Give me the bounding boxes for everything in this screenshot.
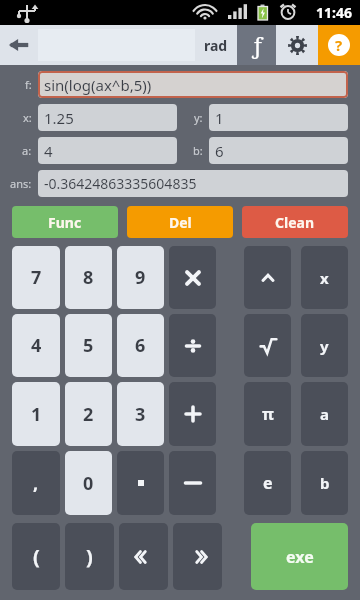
staticText: 2 — [83, 402, 94, 427]
staticText: f: — [25, 77, 32, 92]
staticText: 9 — [135, 265, 146, 290]
button[interactable]: y — [301, 314, 348, 377]
button[interactable]: Square root — [244, 314, 291, 377]
staticText: 3 — [135, 402, 146, 427]
button[interactable]: rad — [38, 25, 237, 65]
staticText: ( — [33, 543, 40, 570]
button[interactable]: 8 — [65, 246, 112, 309]
button[interactable]: a — [301, 382, 348, 446]
button[interactable]: 0 — [65, 451, 112, 515]
staticText: a — [320, 404, 329, 424]
button[interactable]: Decimal point — [117, 451, 164, 515]
button[interactable]: π — [244, 382, 291, 446]
button[interactable]: Functions — [237, 25, 276, 65]
button[interactable]: Back — [0, 25, 38, 65]
button[interactable]: ) — [65, 523, 114, 590]
button[interactable]: 4 — [12, 314, 60, 377]
staticText: 0 — [83, 471, 94, 496]
button[interactable]: sin(log(ax^b,5)) — [38, 71, 348, 98]
staticText: 11:46 — [316, 3, 352, 22]
button[interactable]: Del — [127, 206, 233, 238]
button[interactable]: Clean — [242, 206, 348, 238]
staticText: x: — [23, 110, 32, 125]
button[interactable]: Help — [318, 25, 360, 65]
staticText: π — [262, 403, 274, 425]
staticText: 6 — [215, 141, 224, 161]
button[interactable]: 1 — [209, 104, 348, 131]
staticText: b: — [193, 143, 203, 158]
button[interactable]: ( — [12, 523, 60, 590]
staticText: 4 — [44, 141, 53, 161]
button[interactable]: b — [301, 451, 348, 515]
button[interactable]: Minus — [169, 451, 216, 515]
button[interactable]: 2 — [65, 382, 112, 446]
staticText: ƒ — [252, 30, 262, 60]
staticText: Clean — [275, 213, 315, 232]
button[interactable]: -0.36424863335604835 — [38, 170, 348, 197]
button[interactable]: Move left — [119, 523, 168, 590]
staticText: exe — [286, 546, 314, 568]
staticText: ans: — [10, 176, 32, 191]
staticText: ) — [86, 543, 93, 570]
button[interactable]: Divide — [169, 314, 216, 377]
button[interactable]: 6 — [209, 137, 348, 164]
staticText: ? — [335, 35, 343, 55]
staticText: 6 — [135, 333, 146, 358]
button[interactable]: Func — [12, 206, 118, 238]
staticText: b — [320, 473, 330, 493]
button[interactable]: 4 — [38, 137, 177, 164]
button[interactable]: Multiply — [169, 246, 216, 309]
button[interactable]: Plus — [169, 382, 216, 446]
button[interactable]: 6 — [117, 314, 164, 377]
staticText: 1 — [215, 108, 224, 128]
staticText: , — [33, 471, 39, 496]
button[interactable]: 9 — [117, 246, 164, 309]
button[interactable]: , — [12, 451, 60, 515]
button[interactable]: 1 — [12, 382, 60, 446]
button[interactable]: Power — [244, 246, 291, 309]
staticText: 1 — [31, 402, 42, 427]
staticText: Del — [169, 213, 192, 232]
staticText: 1.25 — [44, 108, 74, 128]
staticText: y — [320, 336, 329, 356]
button[interactable]: exe — [251, 523, 348, 590]
button[interactable]: e — [244, 451, 291, 515]
staticText: 5 — [83, 333, 94, 358]
button[interactable]: Move right — [173, 523, 222, 590]
staticText: y: — [194, 110, 203, 125]
button[interactable]: 7 — [12, 246, 60, 309]
staticText: 7 — [31, 265, 42, 290]
staticText: sin(log(ax^b,5)) — [44, 75, 152, 95]
staticText: rad — [204, 36, 228, 55]
button[interactable]: Settings — [276, 25, 318, 65]
staticText: -0.36424863335604835 — [44, 174, 197, 193]
button[interactable]: 1.25 — [38, 104, 177, 131]
button[interactable]: x — [301, 246, 348, 309]
button[interactable]: 3 — [117, 382, 164, 446]
staticText: x — [320, 268, 329, 288]
staticText: Func — [48, 213, 82, 232]
staticText: 8 — [83, 265, 94, 290]
staticText: e — [263, 472, 273, 494]
button[interactable]: 5 — [65, 314, 112, 377]
staticText: 4 — [31, 333, 42, 358]
staticText: a: — [22, 143, 32, 158]
